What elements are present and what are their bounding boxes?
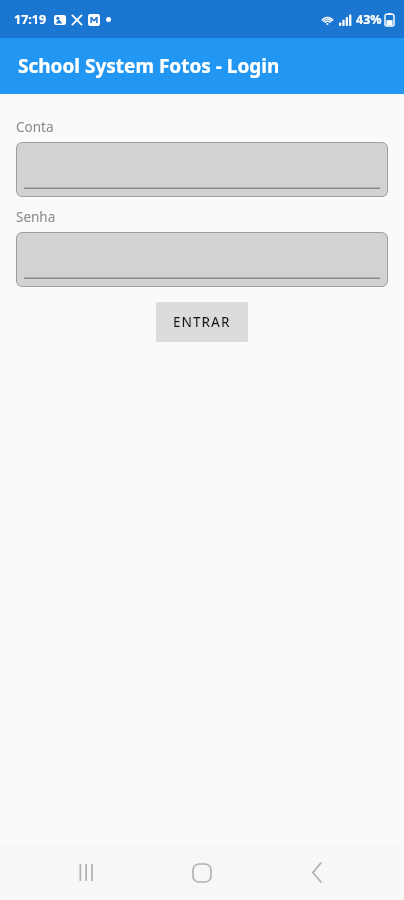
staticText: 17:19 (14, 11, 47, 28)
staticText: Senha (16, 208, 56, 226)
button[interactable]: Home (174, 845, 230, 900)
button[interactable] (16, 232, 388, 287)
button[interactable]: ENTRAR (156, 302, 248, 342)
staticText: 43% (356, 11, 382, 28)
staticText: ENTRAR (173, 313, 231, 331)
button[interactable]: Recent apps (59, 845, 115, 900)
button[interactable]: Back (289, 845, 345, 900)
button[interactable] (16, 142, 388, 197)
staticText: School System Fotos - Login (18, 53, 280, 79)
staticText: Conta (16, 118, 54, 136)
